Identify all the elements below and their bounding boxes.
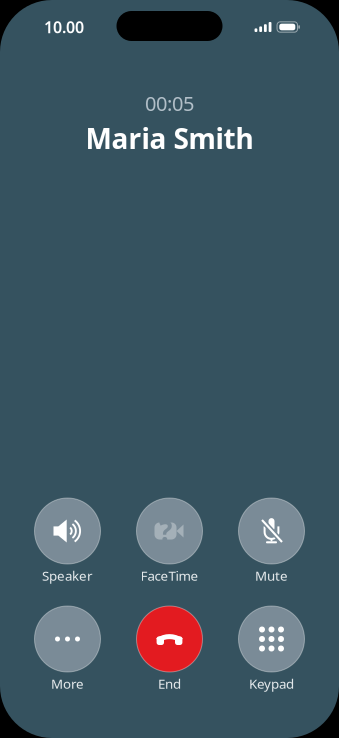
staticText: Mute — [255, 567, 288, 584]
button[interactable]: More — [34, 606, 100, 690]
staticText: Keypad — [249, 675, 294, 692]
button[interactable]: Keypad — [238, 606, 304, 690]
staticText: More — [51, 675, 84, 692]
button[interactable]: End — [136, 606, 202, 690]
staticText: ? — [159, 512, 172, 550]
staticText: Speaker — [42, 567, 93, 584]
button[interactable]: ? — [136, 498, 202, 582]
staticText: 10.00 — [44, 16, 84, 38]
button[interactable]: Speaker — [34, 498, 100, 582]
staticText: End — [158, 675, 181, 692]
staticText: 00:05 — [145, 90, 194, 117]
button[interactable]: Mute — [238, 498, 304, 582]
staticText: FaceTime — [140, 567, 198, 584]
staticText: Maria Smith — [85, 120, 253, 157]
